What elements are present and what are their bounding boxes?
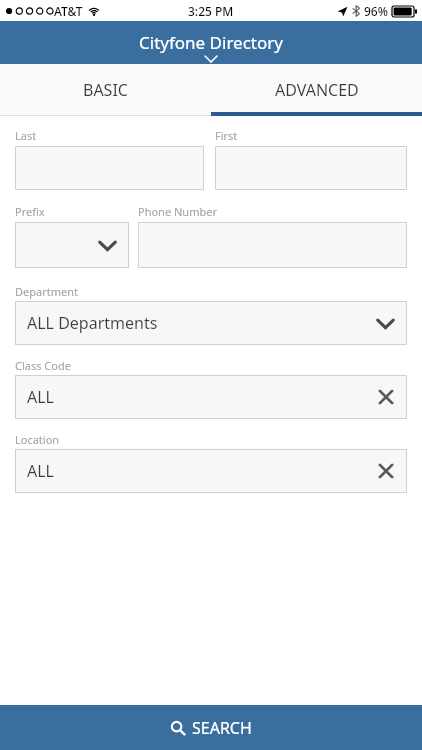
staticText: Class Code	[15, 358, 71, 373]
staticText: Cityfone Directory	[139, 31, 283, 54]
button[interactable]: Last name	[15, 146, 204, 190]
staticText: Last	[15, 128, 37, 143]
staticText: ALL Departments	[27, 312, 158, 334]
button[interactable]: BASIC	[0, 64, 211, 116]
staticText: Department	[15, 284, 78, 299]
staticText: AT&T	[54, 3, 83, 19]
staticText: ALL	[27, 386, 54, 408]
button[interactable]: ADVANCED	[211, 64, 422, 116]
staticText: 96%	[364, 3, 388, 19]
button[interactable]: Location	[15, 449, 407, 493]
button[interactable]: Prefix	[15, 222, 129, 268]
staticText: Prefix	[15, 204, 45, 219]
staticText: SEARCH	[192, 717, 252, 739]
staticText: Location	[15, 432, 60, 447]
button[interactable]: Department	[15, 301, 407, 345]
button[interactable]: Class code	[15, 375, 407, 419]
button[interactable]: Phone number	[138, 222, 407, 268]
staticText: Phone Number	[138, 204, 217, 219]
button[interactable]: Cityfone Directory	[0, 21, 422, 64]
button[interactable]: First name	[215, 146, 407, 190]
button[interactable]: SEARCH	[0, 705, 422, 750]
staticText: 3:25 PM	[188, 3, 234, 19]
staticText: ALL	[27, 460, 54, 482]
staticText: First	[215, 128, 238, 143]
staticText: BASIC	[83, 79, 128, 101]
staticText: ADVANCED	[275, 79, 359, 101]
